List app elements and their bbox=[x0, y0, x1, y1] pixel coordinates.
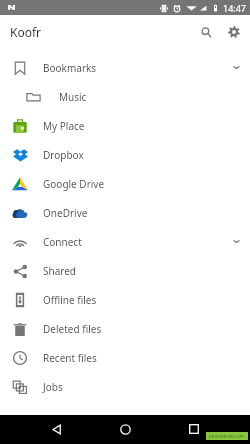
button[interactable]: My Place bbox=[0, 111, 250, 140]
button[interactable]: Search bbox=[192, 18, 220, 46]
staticText: Koofr bbox=[10, 24, 42, 40]
button[interactable]: Music bbox=[0, 82, 250, 111]
staticText: Connect bbox=[43, 235, 82, 249]
button[interactable]: Home bbox=[112, 416, 138, 442]
staticText: Music bbox=[59, 90, 87, 104]
staticText: OneDrive bbox=[43, 206, 88, 220]
button[interactable]: Settings bbox=[220, 18, 248, 46]
button[interactable]: Dropbox bbox=[0, 140, 250, 169]
staticText: phonedroid.com bbox=[209, 433, 245, 439]
button[interactable]: Recent files bbox=[0, 343, 250, 372]
staticText: Jobs bbox=[43, 380, 63, 394]
button[interactable]: Bookmarks bbox=[0, 53, 250, 82]
button[interactable]: Jobs bbox=[0, 372, 250, 401]
staticText: Offline files bbox=[43, 293, 97, 307]
staticText: Deleted files bbox=[43, 322, 102, 336]
button[interactable]: Google Drive bbox=[0, 169, 250, 198]
button[interactable]: Offline files bbox=[0, 285, 250, 314]
button[interactable]: Recents bbox=[181, 416, 207, 442]
button[interactable]: Shared bbox=[0, 256, 250, 285]
staticText: Dropbox bbox=[43, 148, 84, 162]
button[interactable]: Deleted files bbox=[0, 314, 250, 343]
staticText: My Place bbox=[43, 119, 85, 133]
button[interactable]: Connect bbox=[0, 227, 250, 256]
staticText: Recent files bbox=[43, 351, 97, 365]
staticText: Bookmarks bbox=[43, 61, 97, 75]
button[interactable]: Back bbox=[43, 416, 69, 442]
staticText: Google Drive bbox=[43, 177, 105, 191]
button[interactable]: OneDrive bbox=[0, 198, 250, 227]
staticText: Shared bbox=[43, 264, 76, 278]
staticText: 14:47 bbox=[223, 2, 247, 14]
